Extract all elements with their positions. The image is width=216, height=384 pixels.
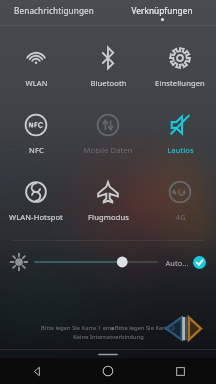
button[interactable]: WLAN-Hotspot	[0, 167, 72, 234]
button[interactable]: Flugmodus	[72, 167, 144, 234]
staticText: Keine Internetverbindung	[73, 333, 144, 341]
other: Lautlos	[167, 112, 193, 138]
button[interactable]: WLAN	[0, 33, 72, 100]
other: WLAN-Hotspot	[23, 179, 49, 205]
other: Bluetooth	[95, 45, 121, 71]
staticText: Auto...	[165, 258, 189, 268]
staticText: Verknüpfungen	[131, 5, 193, 16]
button[interactable]: Recents	[144, 358, 216, 384]
staticText: Lautlos	[167, 145, 194, 155]
staticText: Einstellungen	[155, 78, 205, 88]
button[interactable]: Bluetooth	[72, 33, 144, 100]
other: Einstellungen	[167, 45, 193, 71]
staticText: Benachrichtigungen	[14, 5, 94, 16]
button[interactable]: Brightness	[10, 253, 28, 271]
other: 4G	[167, 179, 193, 205]
button[interactable]: Einstellungen	[144, 33, 216, 100]
staticText: Bluetooth	[90, 78, 127, 88]
staticText: NFC	[29, 145, 44, 155]
button[interactable]: Mobile Daten	[72, 100, 144, 167]
button[interactable]: Benachrichtigungen	[0, 0, 108, 26]
button[interactable]: Back	[0, 358, 72, 384]
button[interactable]: Lautlos	[144, 100, 216, 167]
button[interactable]	[35, 252, 157, 272]
other: NFC	[23, 112, 49, 138]
staticText: WLAN-Hotspot	[9, 212, 63, 222]
staticText: Flugmodus	[88, 212, 129, 222]
other: Flugmodus	[95, 179, 121, 205]
staticText: Bitte legen Sie Karte 1 ein▪Bitte legen …	[41, 324, 175, 332]
staticText: 4G	[175, 212, 186, 222]
staticText: Mobile Daten	[83, 145, 133, 155]
button[interactable]: NFC	[0, 100, 72, 167]
staticText: WLAN	[25, 78, 48, 88]
button[interactable]: Auto...	[165, 256, 206, 269]
button[interactable]: Home	[72, 358, 144, 384]
button[interactable]: 4G	[144, 167, 216, 234]
button[interactable]: Verknüpfungen	[108, 0, 216, 26]
other: WLAN	[23, 45, 49, 71]
other: Auto brightness	[193, 256, 206, 269]
other: Mobile Daten	[95, 112, 121, 138]
